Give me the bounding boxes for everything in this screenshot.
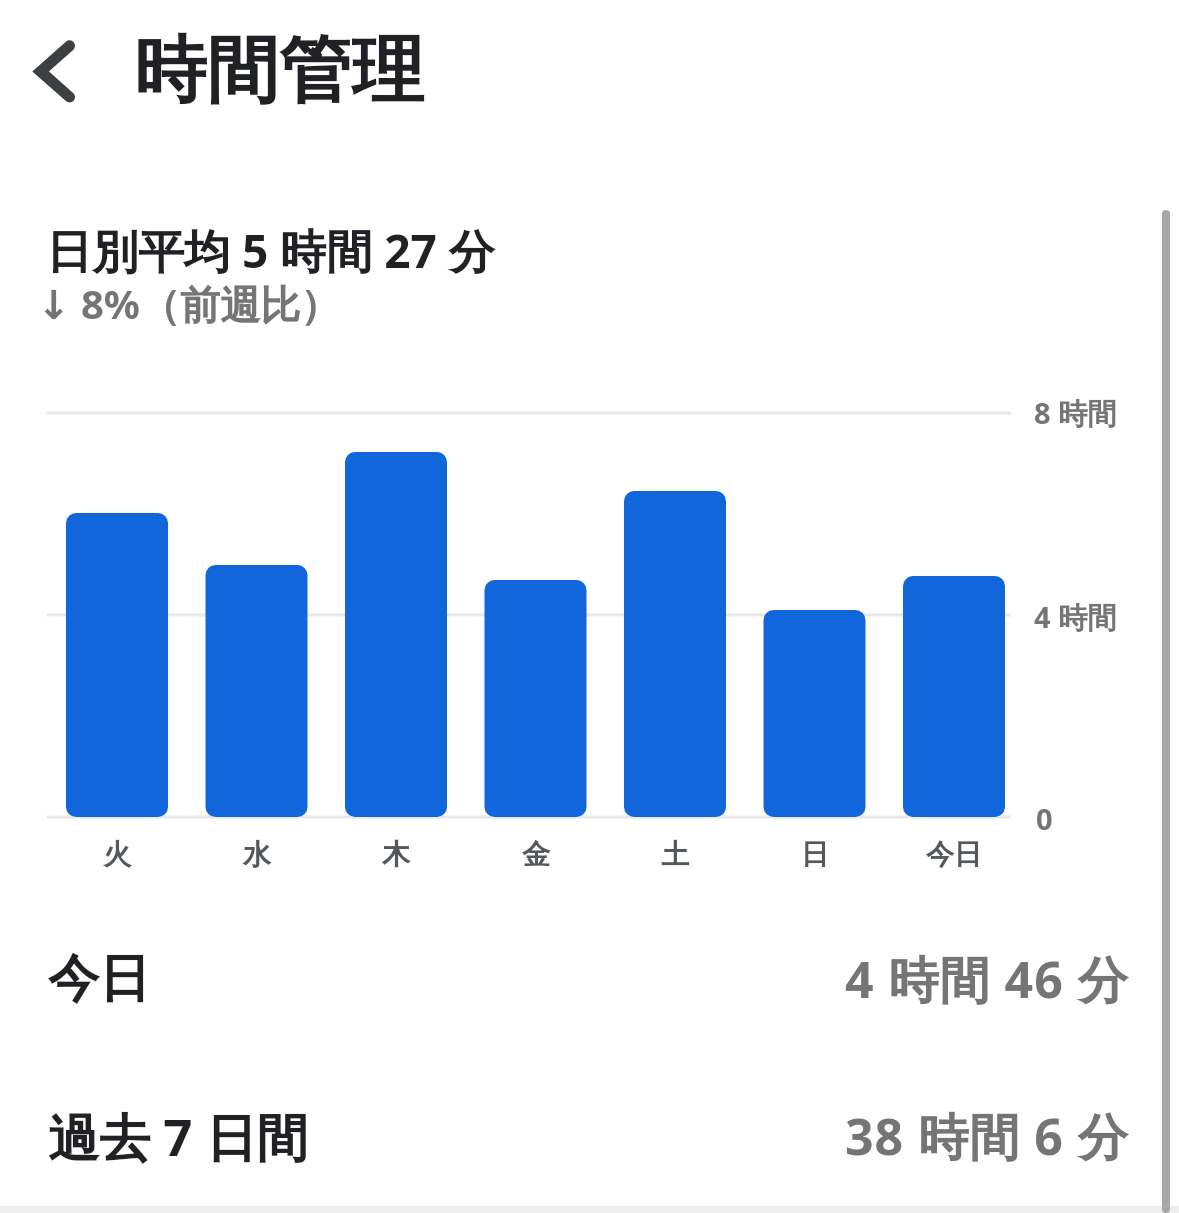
staticText: 木: [382, 837, 410, 872]
staticText: 8 時間: [1034, 393, 1117, 433]
staticText: 金: [522, 837, 550, 872]
staticText: 今日: [926, 837, 982, 872]
button[interactable]: [20, 25, 100, 115]
button[interactable]: 過去 7 日間: [48, 1101, 1129, 1171]
staticText: 土: [661, 837, 689, 872]
staticText: 過去 7 日間: [48, 1101, 308, 1171]
staticText: 水: [243, 837, 271, 872]
staticText: 火: [103, 837, 131, 872]
staticText: 38 時間 6 分: [845, 1102, 1129, 1170]
staticText: 4 時間 46 分: [845, 945, 1129, 1013]
staticText: 日: [801, 837, 829, 872]
staticText: 時間管理: [134, 26, 424, 117]
staticText: 日別平均 5 時間 27 分: [46, 219, 495, 282]
staticText: ↓ 8%（前週比）: [37, 276, 340, 331]
staticText: 4 時間: [1034, 597, 1117, 637]
staticText: 今日: [48, 947, 150, 1011]
button[interactable]: 今日: [48, 944, 1129, 1014]
staticText: 0: [1036, 799, 1053, 838]
